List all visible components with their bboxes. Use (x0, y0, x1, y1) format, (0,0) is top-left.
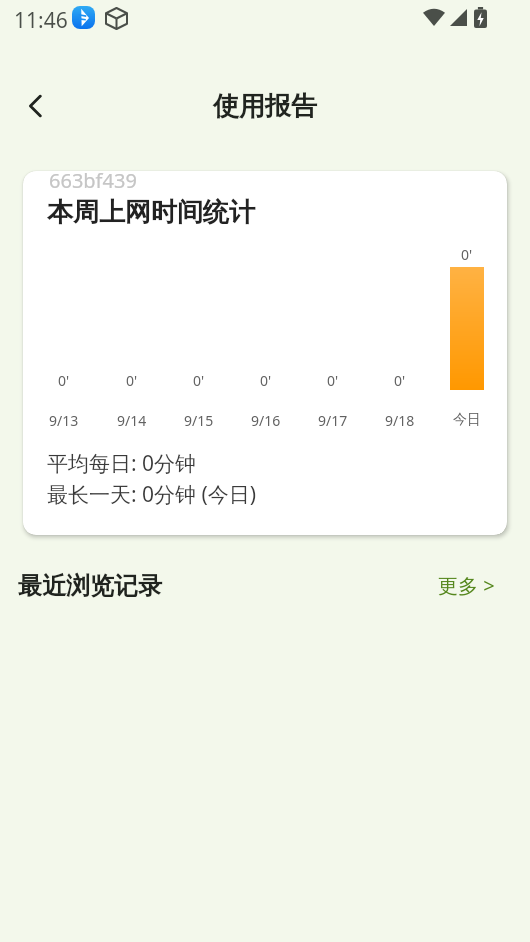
staticText: 0' (461, 245, 473, 264)
staticText: 平均每日: 0分钟 (47, 449, 197, 478)
staticText: 9/17 (318, 411, 348, 430)
staticText: 最近浏览记录 (18, 571, 162, 601)
staticText: 0' (394, 371, 406, 390)
staticText: 11:46 (14, 6, 68, 35)
staticText: 本周上网时间统计 (47, 196, 255, 229)
staticText: 9/16 (251, 411, 281, 430)
staticText: 0' (327, 371, 339, 390)
staticText: 9/15 (184, 411, 214, 430)
staticText: 9/13 (49, 411, 79, 430)
staticText: 9/14 (117, 411, 147, 430)
staticText: 0' (193, 371, 205, 390)
staticText: 663bf439 (49, 171, 137, 194)
staticText: 0' (126, 371, 138, 390)
button[interactable]: 更多 > (438, 572, 495, 599)
staticText: 最长一天: 0分钟 (今日) (47, 480, 257, 509)
staticText: 使用报告 (213, 90, 317, 123)
staticText: 今日 (453, 411, 481, 429)
staticText: 9/18 (385, 411, 415, 430)
button[interactable] (26, 93, 46, 119)
staticText: 0' (58, 371, 70, 390)
staticText: 0' (260, 371, 272, 390)
